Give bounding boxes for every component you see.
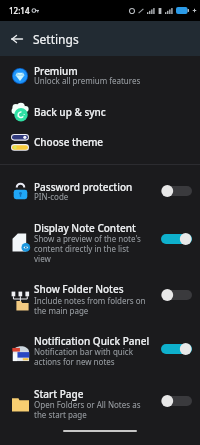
staticText: Back up & sync — [34, 105, 106, 119]
button[interactable] — [0, 130, 200, 156]
staticText: PIN-code — [34, 191, 164, 202]
button[interactable] — [0, 174, 200, 206]
staticText: Display Note Content — [34, 221, 136, 235]
staticText: Show Folder Notes — [34, 282, 124, 296]
button[interactable]: Toggle off — [161, 395, 192, 407]
staticText: Notification Quick Panel — [34, 334, 150, 348]
staticText: Show a preview of the note's content dir… — [34, 233, 146, 265]
button[interactable] — [0, 381, 200, 425]
button[interactable] — [0, 60, 200, 88]
staticText: Choose theme — [34, 135, 104, 149]
button[interactable]: Back — [4, 26, 30, 52]
button[interactable]: Toggle off — [161, 185, 192, 197]
button[interactable] — [0, 100, 200, 126]
button[interactable] — [0, 276, 200, 320]
button[interactable] — [0, 328, 200, 372]
staticText: Premium — [34, 64, 78, 78]
staticText: 12:14 — [9, 5, 30, 16]
staticText: Notification bar with quick actions for … — [34, 346, 146, 368]
staticText: Unlock all premium features — [34, 75, 164, 86]
staticText: Include notes from folders on the main p… — [34, 295, 150, 317]
button[interactable]: Toggle on — [161, 233, 192, 245]
button[interactable]: Toggle on — [161, 343, 192, 355]
button[interactable] — [0, 215, 200, 267]
staticText: Settings — [33, 31, 79, 47]
button[interactable]: Toggle off — [161, 289, 192, 301]
staticText: Start Page — [34, 387, 84, 401]
staticText: Open Folders or All Notes as the start p… — [34, 399, 148, 421]
staticText: Password protection — [34, 180, 133, 194]
